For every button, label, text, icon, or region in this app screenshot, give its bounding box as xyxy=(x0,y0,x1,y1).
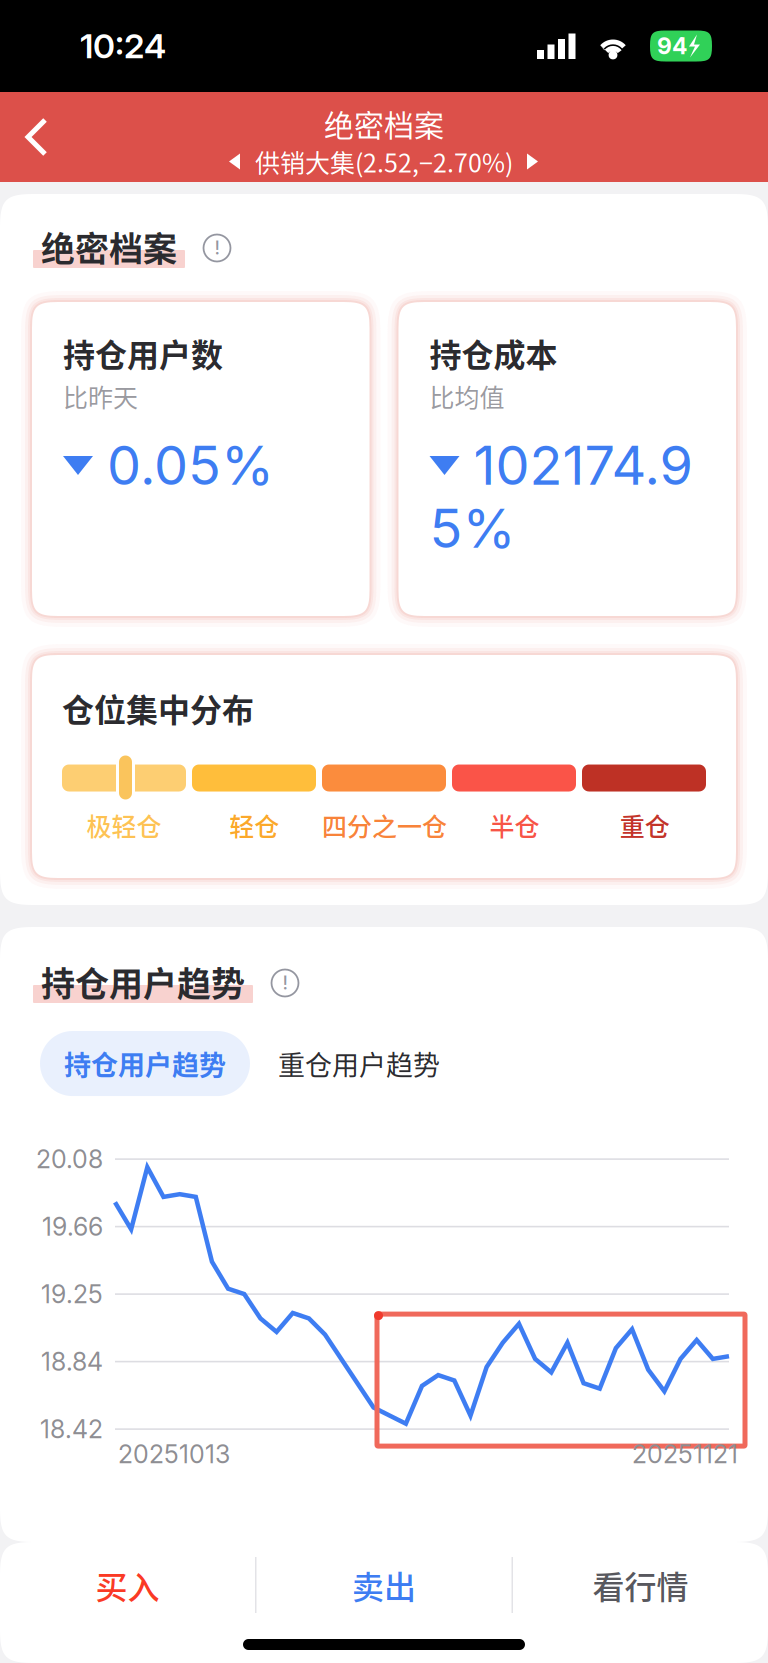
staticText: 供销大集(2.52,−2.70%) xyxy=(255,143,513,180)
staticText: 102174.9 xyxy=(473,432,692,498)
button[interactable]: 看行情 xyxy=(513,1542,768,1628)
staticText: 绝密档案 xyxy=(41,222,177,271)
button[interactable]: 重仓用户趋势 xyxy=(278,1031,440,1096)
staticText: 半仓 xyxy=(490,807,540,843)
button[interactable]: 说明 xyxy=(267,965,303,1001)
staticText: 持仓用户趋势 xyxy=(64,1044,226,1083)
staticText: 四分之一仓 xyxy=(322,807,447,843)
staticText: 持仓成本 xyxy=(429,330,557,376)
staticText: 轻仓 xyxy=(229,807,279,843)
staticText: 10:24 xyxy=(80,25,166,66)
button[interactable]: 持仓用户趋势 xyxy=(40,1031,250,1096)
button[interactable]: 说明 xyxy=(199,230,235,266)
staticText: 20251121 xyxy=(632,1439,738,1469)
staticText: 看行情 xyxy=(592,1562,688,1608)
button[interactable]: 买入 xyxy=(0,1542,255,1628)
staticText: 19.66 xyxy=(42,1211,103,1242)
staticText: 94 xyxy=(657,32,687,60)
staticText: 5% xyxy=(429,495,515,561)
staticText: 重仓 xyxy=(620,807,670,843)
staticText: 持仓用户趋势 xyxy=(41,957,245,1006)
staticText: 19.25 xyxy=(41,1279,103,1309)
staticText: 极轻仓 xyxy=(86,807,161,843)
staticText: ! xyxy=(282,972,287,994)
staticText: 买入 xyxy=(95,1562,159,1608)
staticText: 20251013 xyxy=(118,1439,230,1469)
staticText: 20.08 xyxy=(36,1144,103,1174)
staticText: 绝密档案 xyxy=(324,102,444,145)
button[interactable]: 返回 xyxy=(0,92,74,182)
staticText: ! xyxy=(214,237,219,259)
staticText: 18.42 xyxy=(40,1414,103,1444)
staticText: 18.84 xyxy=(41,1346,103,1377)
button[interactable]: 卖出 xyxy=(256,1542,511,1628)
staticText: 重仓用户趋势 xyxy=(278,1044,440,1083)
staticText: 仓位集中分布 xyxy=(62,685,254,731)
staticText: 持仓用户数 xyxy=(63,330,223,376)
staticText: 0.05% xyxy=(107,432,274,498)
staticText: 比均值 xyxy=(429,378,504,414)
staticText: 卖出 xyxy=(352,1562,416,1608)
staticText: 比昨天 xyxy=(63,378,138,414)
